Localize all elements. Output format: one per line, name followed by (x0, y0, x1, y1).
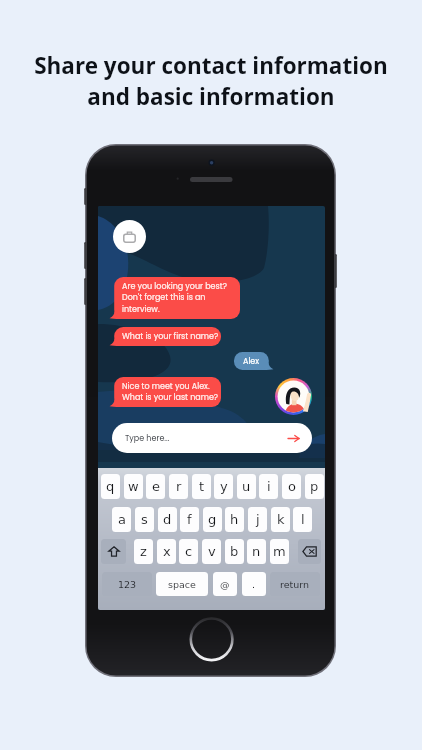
button[interactable]: b (225, 539, 244, 564)
button[interactable]: s (135, 507, 154, 532)
staticText: c (185, 544, 193, 559)
button[interactable]: p (305, 474, 324, 499)
button[interactable]: Are you looking your best? Don't forget … (110, 277, 240, 319)
button[interactable]: l (293, 507, 312, 532)
staticText: r (176, 479, 182, 494)
button[interactable]: j (248, 507, 267, 532)
staticText: f (187, 512, 192, 527)
staticText: l (301, 512, 305, 527)
staticText: Share your contact information and basic… (34, 50, 388, 112)
staticText: Nice to meet you Alex. What is your last… (122, 381, 219, 403)
staticText: b (230, 544, 239, 559)
button[interactable]: q (101, 474, 120, 499)
button[interactable]: return (270, 572, 320, 596)
button[interactable]: Backspace (298, 539, 321, 564)
staticText: j (256, 512, 260, 527)
button[interactable]: . (242, 572, 266, 596)
button[interactable]: o (282, 474, 301, 499)
button[interactable]: @ (213, 572, 237, 596)
button[interactable]: y (214, 474, 233, 499)
button[interactable]: n (247, 539, 266, 564)
button[interactable]: u (237, 474, 256, 499)
button[interactable]: f (180, 507, 199, 532)
staticText: z (140, 544, 147, 559)
button[interactable]: Job profile (113, 220, 146, 253)
button[interactable]: Type here... (112, 423, 312, 453)
staticText: v (208, 544, 216, 559)
button[interactable]: a (112, 507, 131, 532)
staticText: Are you looking your best? Don't forget … (122, 281, 227, 315)
button[interactable]: x (157, 539, 176, 564)
staticText: o (288, 479, 296, 494)
staticText: @ (220, 579, 230, 590)
staticText: Type here... (125, 433, 170, 444)
staticText: What is your first name? (122, 331, 219, 342)
button[interactable]: m (270, 539, 289, 564)
staticText: p (310, 479, 319, 494)
staticText: t (199, 479, 205, 494)
staticText: x (163, 544, 171, 559)
button[interactable]: v (202, 539, 221, 564)
button[interactable]: d (158, 507, 177, 532)
button[interactable]: r (169, 474, 188, 499)
other: Send (286, 432, 301, 445)
button[interactable]: z (134, 539, 153, 564)
staticText: g (208, 512, 217, 527)
button[interactable]: k (271, 507, 290, 532)
button[interactable]: space (156, 572, 208, 596)
staticText: w (128, 479, 139, 494)
staticText: n (252, 544, 261, 559)
staticText: m (273, 544, 286, 559)
staticText: h (230, 512, 239, 527)
button[interactable]: h (225, 507, 244, 532)
staticText: Alex (243, 356, 260, 367)
staticText: e (152, 479, 160, 494)
staticText: d (163, 512, 172, 527)
staticText: y (220, 479, 228, 494)
button[interactable]: Nice to meet you Alex. What is your last… (110, 377, 221, 407)
staticText: 123 (118, 579, 137, 590)
staticText: s (141, 512, 148, 527)
button[interactable]: t (192, 474, 211, 499)
staticText: space (168, 579, 196, 590)
button[interactable]: 123 (102, 572, 152, 596)
staticText: i (267, 479, 271, 494)
staticText: u (242, 479, 251, 494)
button[interactable]: w (124, 474, 143, 499)
button[interactable]: c (179, 539, 198, 564)
staticText: q (106, 479, 115, 494)
button[interactable]: i (259, 474, 278, 499)
button[interactable]: Alex (234, 352, 273, 370)
button[interactable]: g (203, 507, 222, 532)
button[interactable]: What is your first name? (110, 327, 221, 346)
staticText: . (252, 579, 256, 590)
button[interactable]: Shift (101, 539, 126, 564)
staticText: k (277, 512, 285, 527)
button[interactable]: e (146, 474, 165, 499)
staticText: return (280, 579, 310, 590)
staticText: a (118, 512, 126, 527)
